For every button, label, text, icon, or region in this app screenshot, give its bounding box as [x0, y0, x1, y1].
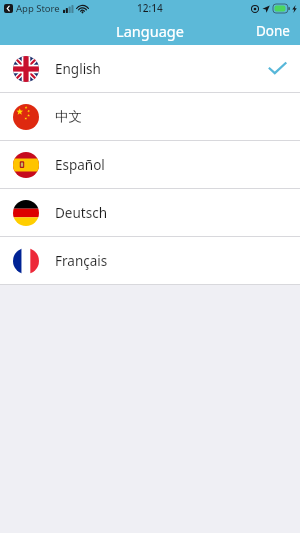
staticText: Français [55, 252, 108, 270]
staticText: Español [55, 156, 105, 174]
button[interactable]: Done [246, 18, 300, 44]
staticText: 12:14 [137, 1, 163, 15]
staticText: Deutsch [55, 204, 107, 222]
button[interactable]: 中文 [0, 93, 300, 140]
button[interactable]: Français [0, 237, 300, 284]
button[interactable]: Deutsch [0, 189, 300, 236]
staticText: English [55, 60, 101, 78]
staticText: Language [116, 21, 184, 41]
button[interactable]: Español [0, 141, 300, 188]
staticText: App Store [16, 2, 60, 15]
staticText: Done [256, 22, 290, 40]
button[interactable]: English [0, 45, 300, 92]
staticText: 中文 [55, 108, 82, 125]
